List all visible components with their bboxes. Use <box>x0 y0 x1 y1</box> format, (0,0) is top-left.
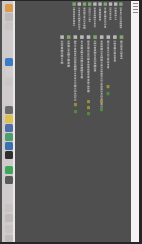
button[interactable]: Browser <box>5 58 13 66</box>
button[interactable]: Messages <box>5 133 13 141</box>
button[interactable]: Commit graph header <box>0 2 142 32</box>
button[interactable]: Commit list <box>0 32 142 117</box>
button[interactable]: Notes <box>5 115 13 123</box>
button[interactable]: Calendar <box>5 142 13 150</box>
button[interactable]: Terminal <box>5 151 13 159</box>
button[interactable]: Music <box>5 166 13 174</box>
button[interactable]: App <box>5 106 13 114</box>
button[interactable]: Finder <box>5 4 13 12</box>
button[interactable]: Side panel <box>131 1 139 242</box>
button[interactable]: Mail <box>5 124 13 132</box>
button[interactable]: Settings <box>5 176 13 184</box>
